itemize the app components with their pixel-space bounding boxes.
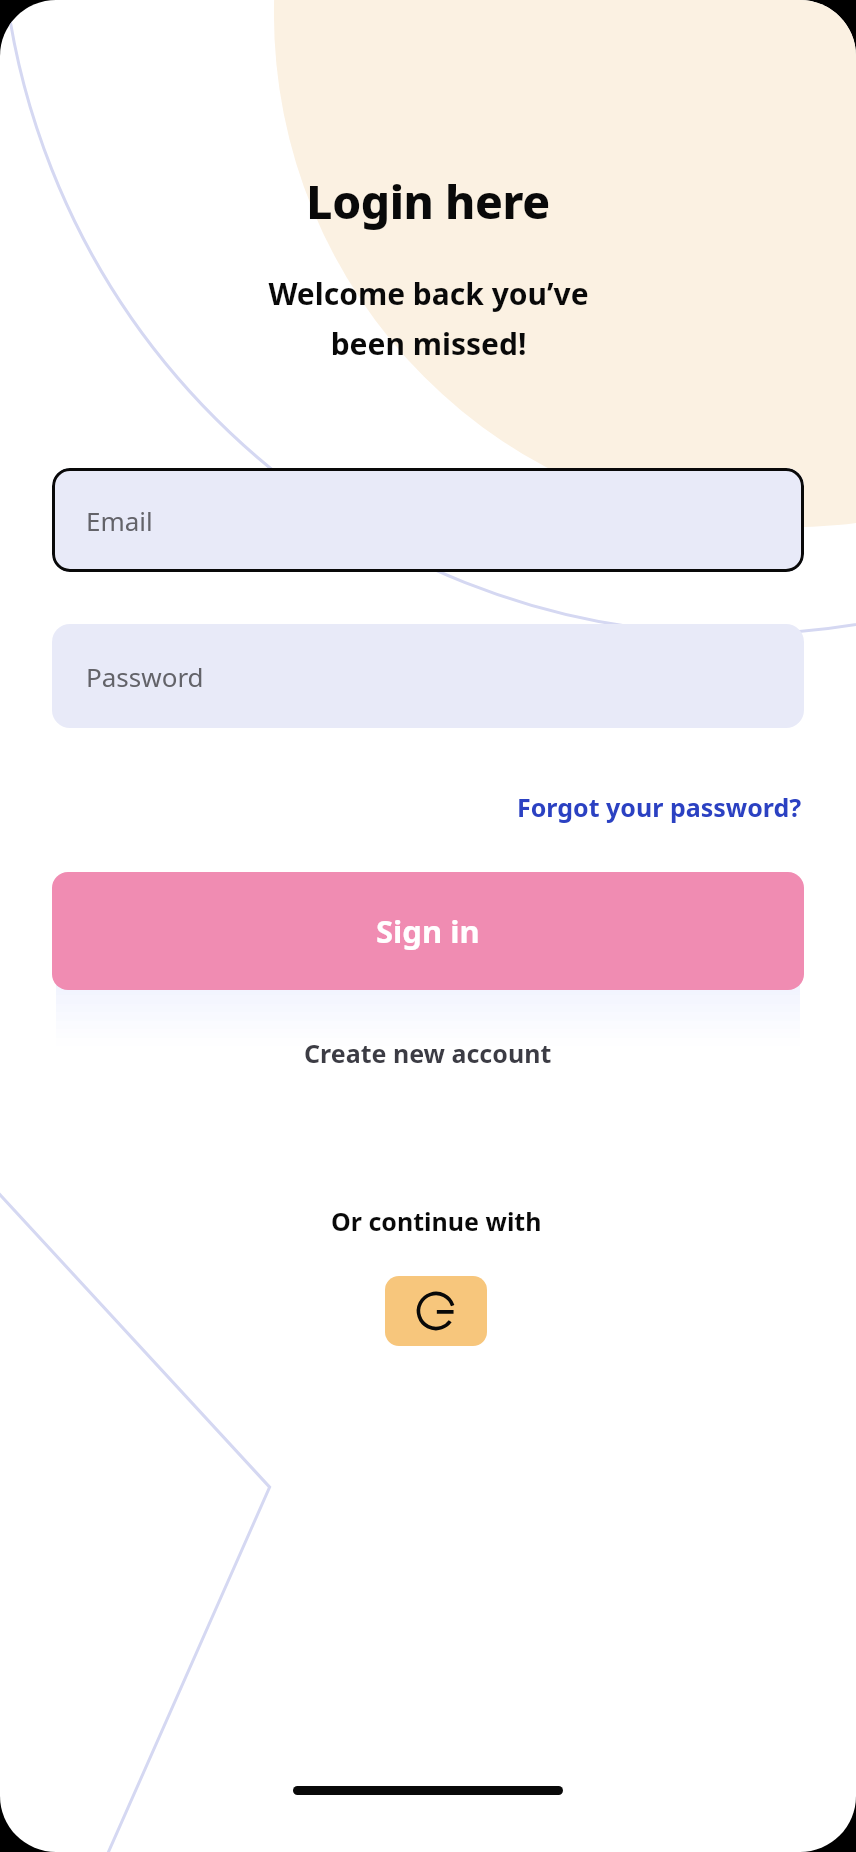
staticText: Forgot your password? xyxy=(517,790,802,824)
staticText: Email xyxy=(86,503,153,538)
staticText: Welcome back you’ve been missed! xyxy=(268,273,589,364)
button[interactable]: Continue with Google xyxy=(385,1276,487,1346)
staticText: Password xyxy=(86,659,204,694)
button[interactable]: Sign in xyxy=(52,872,804,990)
button[interactable]: Create new account xyxy=(296,1030,560,1076)
staticText: Or continue with xyxy=(331,1204,542,1238)
button[interactable]: Forgot your password? xyxy=(515,786,804,828)
button[interactable]: Password xyxy=(52,624,804,728)
staticText: Sign in xyxy=(376,910,480,952)
button[interactable]: Email xyxy=(52,468,804,572)
staticText: Login here xyxy=(306,170,550,233)
staticText: Create new account xyxy=(304,1036,552,1070)
